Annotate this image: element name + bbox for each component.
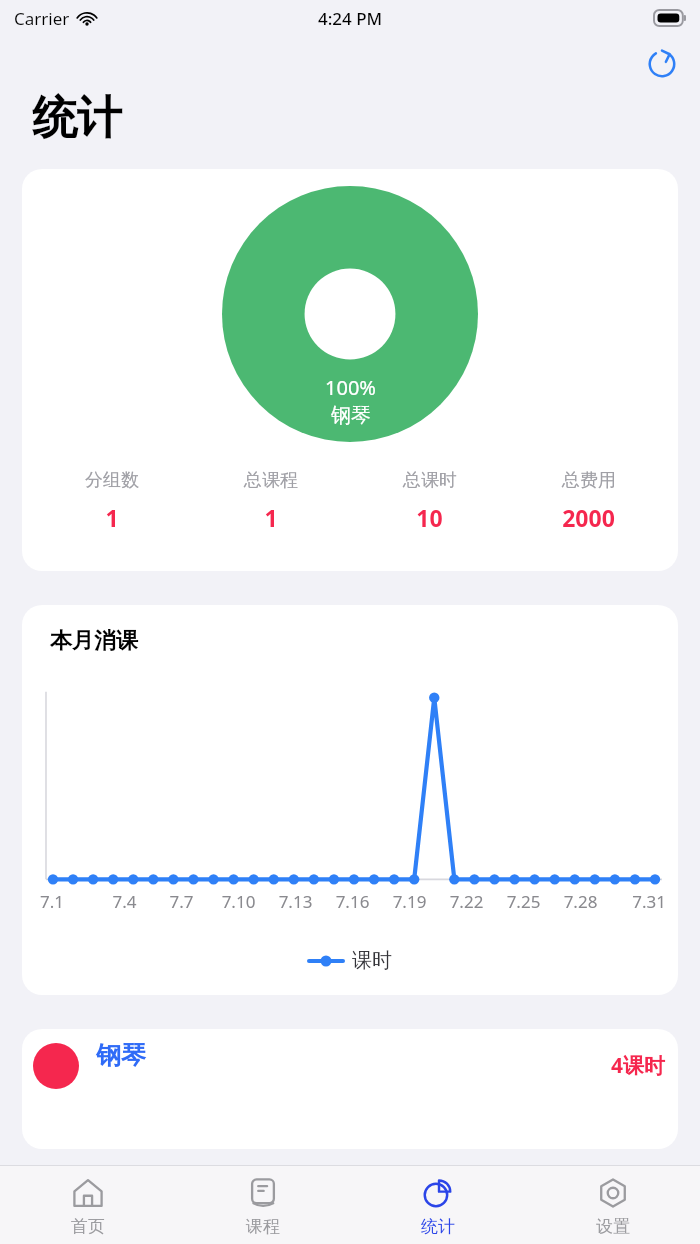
staticText: 7.16	[324, 890, 381, 913]
staticText: 总课程	[244, 469, 298, 492]
staticText: 7.19	[381, 890, 438, 913]
staticText: 课时	[352, 948, 392, 973]
staticText: 100%	[325, 374, 376, 401]
staticText: 7.13	[267, 890, 324, 913]
button[interactable]: Refresh	[638, 39, 686, 87]
staticText: 7.31	[609, 890, 666, 913]
staticText: 设置	[596, 1216, 630, 1237]
button[interactable]: 总课时	[350, 469, 509, 533]
staticText: 首页	[71, 1216, 105, 1237]
staticText: 统计	[32, 90, 122, 147]
button[interactable]: 总课程	[191, 469, 350, 533]
staticText: 10	[416, 502, 443, 533]
staticText: 7.28	[552, 890, 609, 913]
staticText: 7.1	[40, 890, 96, 913]
staticText: 2000	[562, 502, 615, 533]
staticText: 4:24 PM	[318, 7, 383, 30]
staticText: 课程	[246, 1216, 280, 1237]
button[interactable]: 课程	[175, 1166, 350, 1244]
button[interactable]: 首页	[0, 1166, 175, 1244]
button[interactable]: 钢琴	[22, 1029, 678, 1149]
staticText: 1	[105, 502, 119, 533]
staticText: 1	[264, 502, 278, 533]
staticText: 本月消课	[50, 627, 138, 655]
staticText: 7.10	[210, 890, 267, 913]
button[interactable]: 本月消课	[22, 605, 678, 995]
staticText: 7.4	[96, 890, 153, 913]
staticText: Carrier	[14, 7, 70, 30]
staticText: 分组数	[85, 469, 139, 492]
button[interactable]: 设置	[525, 1166, 700, 1244]
button[interactable]: 总费用	[509, 469, 668, 533]
staticText: 总课时	[403, 469, 457, 492]
staticText: 4课时	[611, 1051, 666, 1080]
button[interactable]: 分组数	[32, 469, 191, 533]
button[interactable]: 统计	[350, 1166, 525, 1244]
staticText: 7.25	[495, 890, 552, 913]
staticText: 总费用	[562, 469, 616, 492]
staticText: 7.7	[153, 890, 210, 913]
staticText: 7.22	[438, 890, 495, 913]
button[interactable]: 课时	[309, 948, 392, 973]
staticText: 统计	[421, 1216, 455, 1237]
button[interactable]: 100%	[22, 169, 678, 571]
staticText: 钢琴	[96, 1040, 146, 1071]
staticText: 钢琴	[331, 403, 371, 428]
